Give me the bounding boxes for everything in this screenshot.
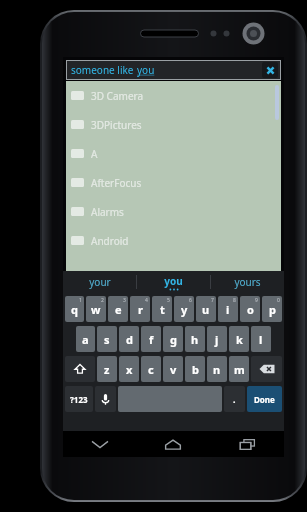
button[interactable]: Alarms xyxy=(66,197,281,226)
button[interactable]: your xyxy=(63,271,136,293)
staticText: d xyxy=(126,332,133,347)
button[interactable]: g xyxy=(163,326,183,352)
staticText: x xyxy=(126,362,133,377)
button[interactable]: you xyxy=(137,271,210,293)
button[interactable]: y xyxy=(174,296,194,322)
staticText: m xyxy=(234,362,245,377)
staticText: s xyxy=(104,332,110,347)
button[interactable]: Clear search xyxy=(262,62,278,78)
staticText: a xyxy=(82,332,89,347)
staticText: z xyxy=(104,362,110,377)
button[interactable]: u xyxy=(196,296,216,322)
button[interactable]: Voice input xyxy=(95,386,116,412)
button[interactable]: Hide keyboard xyxy=(63,431,136,457)
button[interactable]: v xyxy=(163,356,183,382)
staticText: 3D Camera xyxy=(91,89,144,103)
button[interactable]: Android xyxy=(66,226,281,255)
button[interactable]: b xyxy=(185,356,205,382)
button[interactable]: yours xyxy=(211,271,284,293)
staticText: 1 xyxy=(79,297,82,304)
staticText: someone like xyxy=(71,63,137,77)
button[interactable]: j xyxy=(207,326,227,352)
staticText: Android xyxy=(91,234,129,248)
button[interactable]: f xyxy=(141,326,161,352)
button[interactable]: 3DPictures xyxy=(66,110,281,139)
staticText: c xyxy=(148,362,154,377)
staticText: 5 xyxy=(167,297,170,304)
button[interactable]: someone like xyxy=(67,61,280,79)
staticText: q xyxy=(71,302,78,317)
button[interactable]: d xyxy=(119,326,139,352)
staticText: k xyxy=(236,332,243,347)
staticText: n xyxy=(213,362,221,377)
button[interactable]: k xyxy=(229,326,249,352)
staticText: v xyxy=(170,362,177,377)
button[interactable]: q xyxy=(65,296,84,322)
staticText: 8 xyxy=(233,297,236,304)
button[interactable]: m xyxy=(229,356,249,382)
button[interactable]: e xyxy=(108,296,128,322)
staticText: h xyxy=(191,332,199,347)
button[interactable]: w xyxy=(86,296,106,322)
button[interactable]: ?123 xyxy=(65,386,93,412)
staticText: 3 xyxy=(123,297,126,304)
staticText: yours xyxy=(234,275,261,289)
staticText: Done xyxy=(254,394,275,405)
staticText: p xyxy=(269,302,276,317)
button[interactable]: a xyxy=(76,326,95,352)
staticText: f xyxy=(149,332,154,347)
staticText: b xyxy=(192,362,199,377)
staticText: t xyxy=(160,302,165,317)
staticText: u xyxy=(202,302,210,317)
staticText: j xyxy=(215,332,219,347)
staticText: g xyxy=(170,332,177,347)
staticText: AfterFocus xyxy=(91,176,142,190)
staticText: w xyxy=(91,302,101,317)
staticText: A xyxy=(91,147,98,161)
button[interactable]: Shift xyxy=(65,356,95,382)
staticText: 4 xyxy=(145,297,148,304)
button[interactable]: i xyxy=(218,296,238,322)
button[interactable]: . xyxy=(224,386,245,412)
button[interactable]: t xyxy=(152,296,172,322)
staticText: you xyxy=(164,274,183,288)
staticText: 7 xyxy=(211,297,214,304)
button[interactable]: l xyxy=(251,326,271,352)
staticText: . xyxy=(233,393,236,405)
button[interactable]: r xyxy=(130,296,150,322)
staticText: l xyxy=(259,332,263,347)
button[interactable]: z xyxy=(97,356,117,382)
button[interactable]: x xyxy=(119,356,139,382)
button[interactable]: s xyxy=(97,326,117,352)
staticText: 6 xyxy=(189,297,192,304)
button[interactable]: Done xyxy=(247,386,282,412)
staticText: y xyxy=(181,302,188,317)
staticText: o xyxy=(247,302,254,317)
staticText: 9 xyxy=(255,297,258,304)
button[interactable]: p xyxy=(262,296,282,322)
staticText: you xyxy=(137,63,155,77)
staticText: ?123 xyxy=(70,394,88,405)
staticText: i xyxy=(226,302,230,317)
staticText: r xyxy=(138,302,143,317)
staticText: Alarms xyxy=(91,205,124,219)
button[interactable]: o xyxy=(240,296,260,322)
staticText: 2 xyxy=(101,297,104,304)
button[interactable]: n xyxy=(207,356,227,382)
button[interactable]: Home xyxy=(136,431,210,457)
button[interactable]: 3D Camera xyxy=(66,81,281,110)
button[interactable]: A xyxy=(66,139,281,168)
staticText: e xyxy=(115,302,122,317)
button[interactable]: c xyxy=(141,356,161,382)
button[interactable]: Backspace xyxy=(251,356,282,382)
button[interactable]: h xyxy=(185,326,205,352)
staticText: 3DPictures xyxy=(91,118,142,132)
button[interactable]: Recent apps xyxy=(210,431,284,457)
staticText: your xyxy=(89,275,111,289)
button[interactable]: AfterFocus xyxy=(66,168,281,197)
staticText: 0 xyxy=(277,297,280,304)
